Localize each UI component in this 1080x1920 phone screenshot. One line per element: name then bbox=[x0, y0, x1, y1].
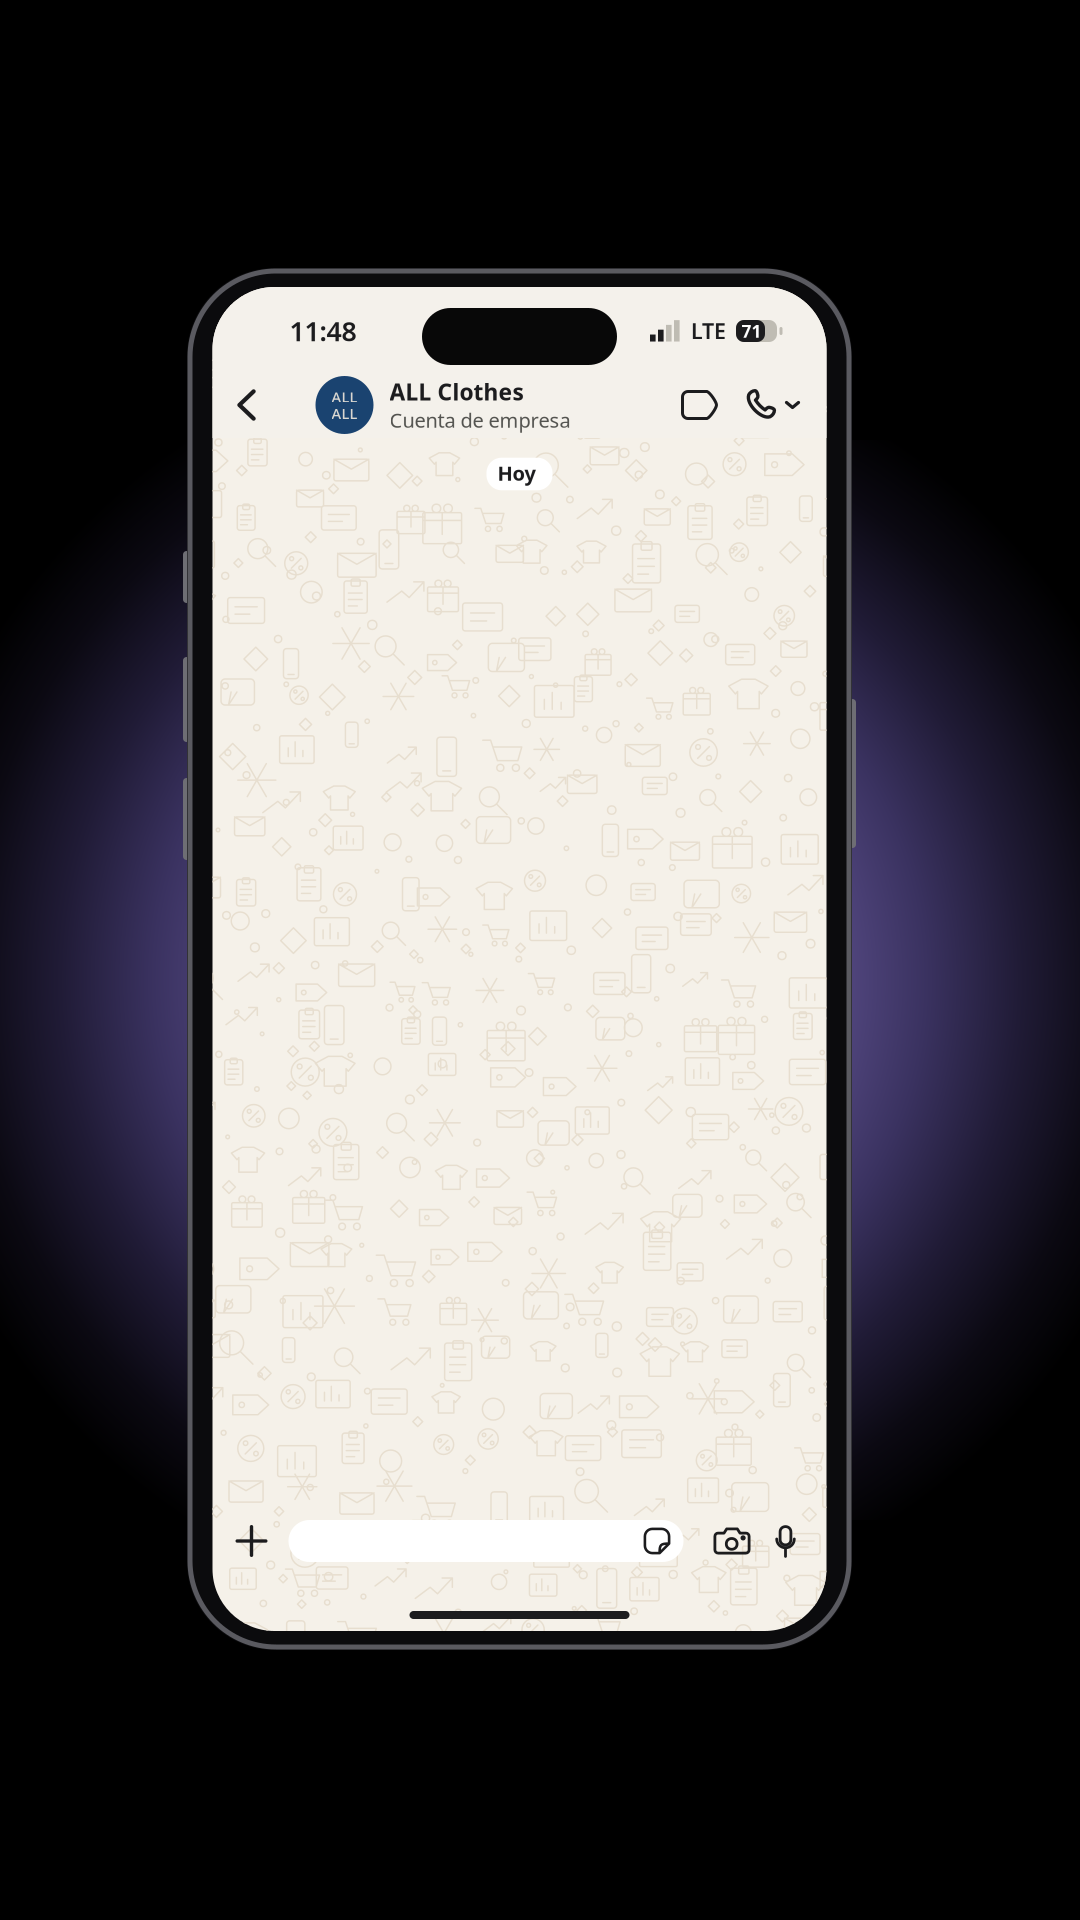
staticText: 71 bbox=[741, 319, 761, 342]
staticText: Cuenta de empresa bbox=[389, 407, 570, 433]
button[interactable]: ALL bbox=[280, 368, 654, 442]
staticText: 11:48 bbox=[289, 313, 356, 349]
staticText: LTE bbox=[691, 317, 726, 345]
button[interactable]: Call bbox=[744, 368, 826, 442]
button[interactable]: Voice message bbox=[773, 1508, 822, 1574]
staticText: ALL bbox=[331, 403, 357, 423]
staticText: Hoy bbox=[497, 460, 535, 486]
staticText: ALL bbox=[331, 387, 357, 406]
button[interactable]: Camera bbox=[683, 1508, 773, 1574]
button[interactable]: Attach bbox=[216, 1508, 288, 1574]
button[interactable]: Labels bbox=[654, 368, 744, 442]
button[interactable]: Stickers bbox=[643, 1520, 683, 1562]
staticText: ALL Clothes bbox=[389, 377, 523, 407]
button[interactable]: Back bbox=[212, 368, 280, 442]
